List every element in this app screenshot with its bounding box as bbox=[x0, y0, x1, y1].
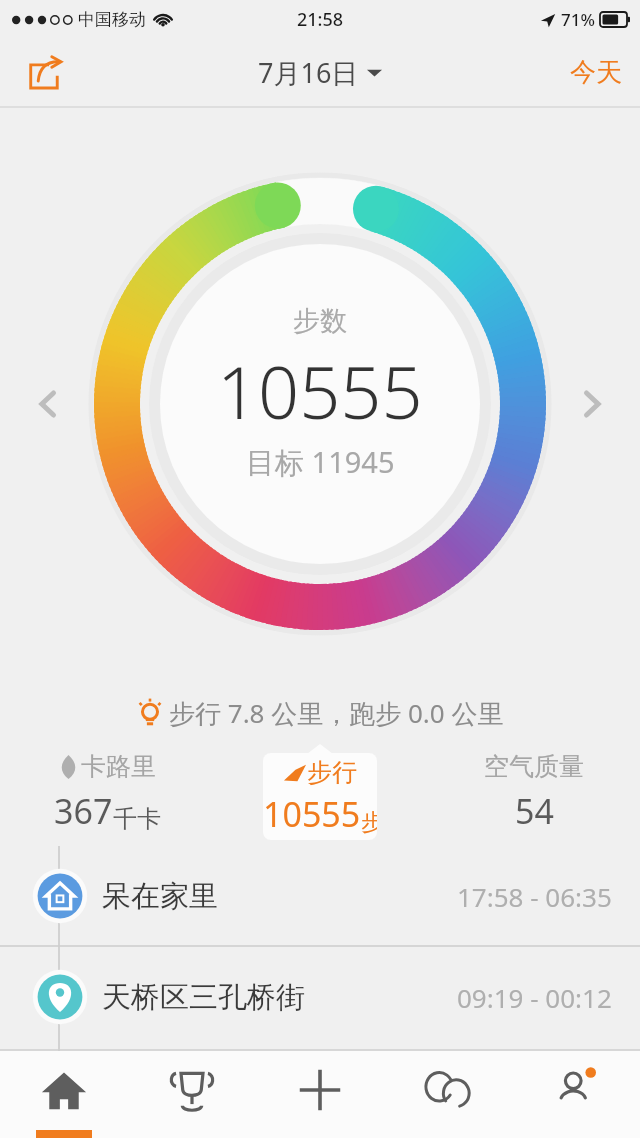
staticText: 千卡 bbox=[113, 804, 161, 834]
button[interactable]: 步行 bbox=[263, 753, 377, 840]
button[interactable]: 步行 7.8 公里，跑步 0.0 公里 bbox=[0, 688, 640, 738]
button[interactable]: Next day bbox=[568, 380, 616, 428]
button[interactable]: Achievements bbox=[128, 1051, 256, 1138]
staticText: 中国移动 bbox=[78, 9, 146, 30]
staticText: 步 bbox=[361, 808, 377, 837]
staticText: 7月16日 bbox=[258, 54, 359, 91]
button[interactable]: Profile bbox=[512, 1051, 640, 1138]
button[interactable]: Messages bbox=[384, 1051, 512, 1138]
staticText: 21:58 bbox=[297, 7, 344, 32]
staticText: 天桥区三孔桥街 bbox=[102, 979, 305, 1016]
staticText: 17:58 - 06:35 bbox=[457, 879, 612, 914]
staticText: 10555 bbox=[217, 342, 423, 440]
button[interactable]: Home bbox=[0, 1051, 128, 1138]
button[interactable]: Add bbox=[256, 1051, 384, 1138]
staticText: 今天 bbox=[570, 56, 622, 89]
staticText: 卡路里 bbox=[81, 751, 156, 782]
button[interactable]: 天桥区三孔桥街 bbox=[0, 947, 640, 1047]
staticText: 步数 bbox=[293, 304, 347, 338]
button[interactable]: 7月16日 bbox=[258, 54, 382, 91]
staticText: 71% bbox=[561, 8, 595, 31]
staticText: 步行 bbox=[307, 757, 357, 788]
staticText: 09:19 - 00:12 bbox=[457, 980, 612, 1015]
staticText: 367 bbox=[54, 788, 113, 834]
staticText: 10555 bbox=[263, 791, 361, 837]
button[interactable]: 空气质量 bbox=[427, 738, 640, 846]
button[interactable]: Share bbox=[20, 48, 70, 98]
button[interactable]: 呆在家里 bbox=[0, 846, 640, 946]
staticText: 呆在家里 bbox=[102, 878, 218, 915]
staticText: 目标 11945 bbox=[246, 442, 395, 482]
staticText: 空气质量 bbox=[484, 751, 584, 782]
button[interactable]: Previous day bbox=[24, 380, 72, 428]
staticText: 54 bbox=[515, 788, 554, 834]
button[interactable]: 卡路里 bbox=[0, 738, 214, 846]
button[interactable]: 今天 bbox=[570, 56, 622, 89]
staticText: 步行 7.8 公里，跑步 0.0 公里 bbox=[169, 695, 504, 731]
